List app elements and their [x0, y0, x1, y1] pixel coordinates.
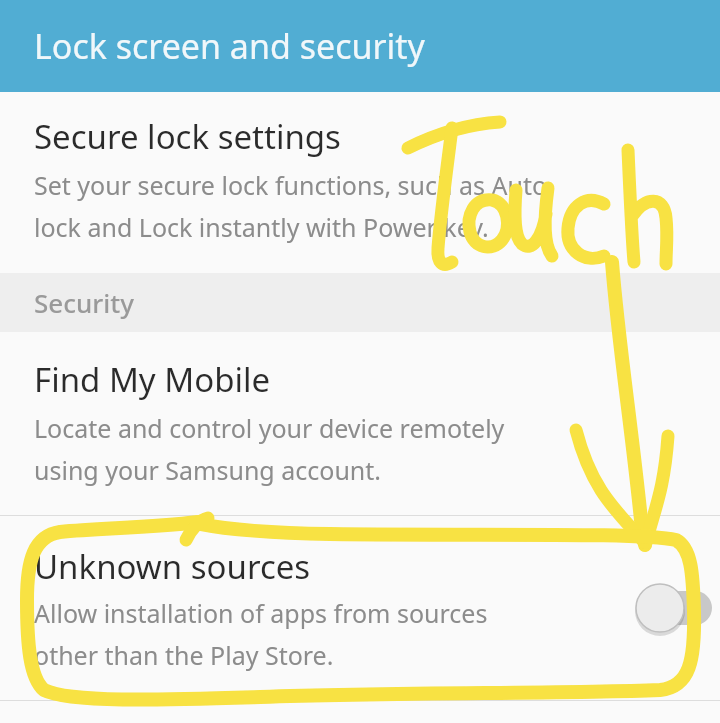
staticText: Security	[34, 285, 134, 320]
button[interactable]: Secure lock settings	[0, 92, 720, 273]
button[interactable]: Unknown sources	[0, 516, 720, 700]
staticText: Find My Mobile	[34, 357, 271, 402]
staticText: Set your secure lock functions, such as …	[34, 168, 548, 244]
staticText: Unknown sources	[34, 544, 311, 589]
staticText: Lock screen and security	[34, 23, 425, 69]
button[interactable]: Find My Mobile	[0, 332, 720, 515]
staticText: Secure lock settings	[34, 114, 341, 159]
staticText: Locate and control your device remotely …	[34, 411, 505, 487]
button[interactable]: Unknown sources toggle, off	[624, 568, 720, 648]
staticText: Allow installation of apps from sources …	[34, 596, 488, 672]
